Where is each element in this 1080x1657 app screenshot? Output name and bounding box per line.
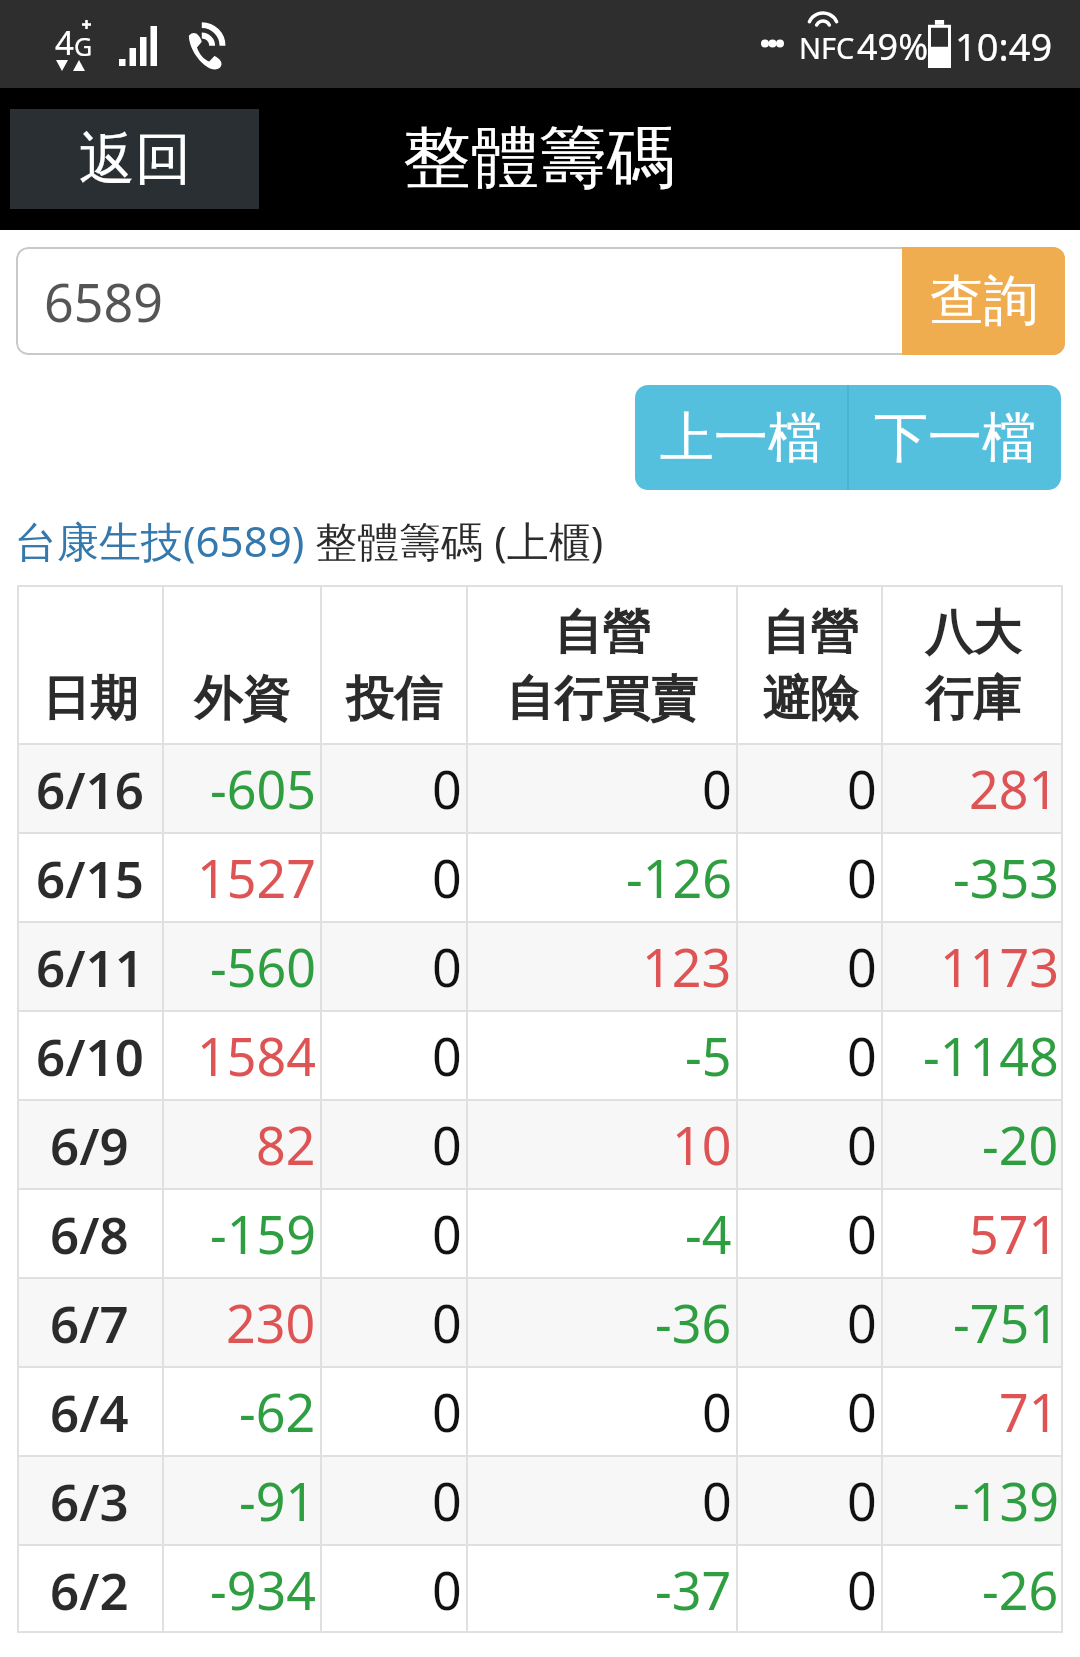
staticText: 1173	[940, 931, 1059, 1002]
staticText: 0	[847, 1020, 877, 1091]
staticText: 避險	[762, 669, 858, 729]
staticText: -36	[655, 1287, 732, 1358]
staticText: 返回	[79, 124, 191, 195]
staticText: 0	[847, 1554, 877, 1625]
staticText: -605	[210, 753, 316, 824]
staticText: 6/3	[50, 1466, 129, 1535]
staticText: 6/11	[36, 932, 144, 1001]
staticText: 八大	[925, 603, 1021, 663]
button[interactable]: 下一檔	[849, 385, 1061, 490]
staticText: 0	[432, 1287, 462, 1358]
staticText: -934	[210, 1554, 316, 1625]
staticText: -560	[210, 931, 316, 1002]
staticText: 0	[432, 753, 462, 824]
staticText: 0	[847, 1198, 877, 1269]
staticText: 自營	[554, 603, 650, 663]
staticText: 0	[432, 1020, 462, 1091]
staticText: 6/4	[50, 1377, 129, 1446]
staticText: 0	[432, 842, 462, 913]
staticText: G	[74, 29, 93, 63]
staticText: -126	[626, 842, 732, 913]
staticText: NFC	[799, 28, 855, 67]
staticText: 6/2	[50, 1555, 129, 1624]
staticText: -751	[953, 1287, 1059, 1358]
staticText: 6/10	[36, 1021, 144, 1090]
staticText: 123	[642, 931, 732, 1002]
staticText: 1584	[197, 1020, 316, 1091]
staticText: 查詢	[930, 267, 1038, 335]
button[interactable]: 上一檔	[635, 385, 847, 490]
staticText: 6/16	[36, 754, 144, 823]
staticText: 0	[432, 1376, 462, 1447]
staticText: 49%	[857, 22, 929, 71]
staticText: 0	[432, 1198, 462, 1269]
staticText: 4	[55, 20, 74, 65]
button[interactable]: 台康生技(6589) 整體籌碼 (上櫃)	[15, 512, 604, 569]
staticText: 0	[702, 1465, 732, 1536]
staticText: -62	[239, 1376, 316, 1447]
staticText: 投信	[346, 669, 442, 729]
staticText: -353	[953, 842, 1059, 913]
staticText: -1148	[923, 1020, 1059, 1091]
staticText: -20	[982, 1109, 1059, 1180]
staticText: 0	[702, 753, 732, 824]
staticText: 10	[672, 1109, 732, 1180]
staticText: 上一檔	[660, 404, 822, 472]
staticText: 6/8	[50, 1199, 129, 1268]
staticText: 71	[999, 1376, 1059, 1447]
staticText: 0	[432, 1465, 462, 1536]
staticText: 自營	[762, 603, 858, 663]
staticText: 0	[847, 753, 877, 824]
staticText: -159	[210, 1198, 316, 1269]
staticText: 571	[969, 1198, 1059, 1269]
staticText: 行庫	[925, 669, 1021, 729]
staticText: 6/9	[50, 1110, 129, 1179]
staticText: 230	[226, 1287, 316, 1358]
staticText: -37	[655, 1554, 732, 1625]
staticText: 整體籌碼	[403, 116, 675, 202]
staticText: 281	[969, 753, 1059, 824]
staticText: 0	[702, 1376, 732, 1447]
button[interactable]: Back	[10, 109, 259, 209]
staticText: 自行買賣	[506, 669, 698, 729]
staticText: 外資	[194, 669, 290, 729]
staticText: -139	[953, 1465, 1059, 1536]
staticText: -91	[239, 1465, 316, 1536]
staticText: 6/15	[36, 843, 144, 912]
staticText: 0	[847, 931, 877, 1002]
staticText: 0	[847, 1465, 877, 1536]
staticText: -26	[982, 1554, 1059, 1625]
staticText: 0	[432, 931, 462, 1002]
staticText: 0	[847, 1376, 877, 1447]
button[interactable]: 查詢	[902, 247, 1065, 355]
staticText: 0	[432, 1554, 462, 1625]
staticText: 82	[256, 1109, 316, 1180]
button[interactable]: 6589	[16, 247, 1065, 355]
staticText: 0	[432, 1109, 462, 1180]
staticText: 6589	[44, 266, 163, 337]
staticText: -4	[685, 1198, 732, 1269]
staticText: 下一檔	[874, 404, 1036, 472]
staticText: 日期	[42, 669, 138, 729]
staticText: 0	[847, 842, 877, 913]
staticText: 0	[847, 1287, 877, 1358]
staticText: 0	[847, 1109, 877, 1180]
staticText: -5	[685, 1020, 732, 1091]
staticText: 6/7	[50, 1288, 129, 1357]
staticText: 10:49	[955, 20, 1053, 72]
staticText: 1527	[197, 842, 316, 913]
